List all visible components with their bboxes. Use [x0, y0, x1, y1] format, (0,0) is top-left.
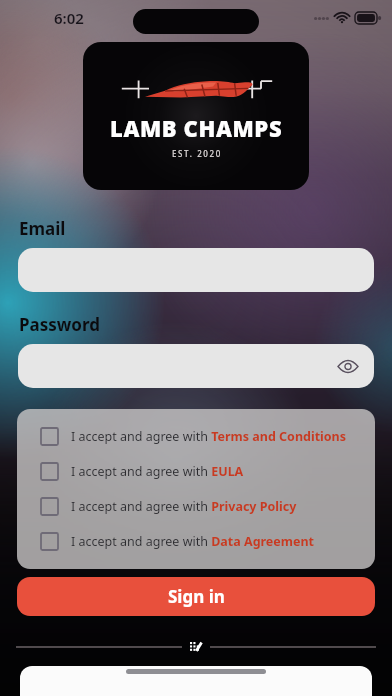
staticText: I accept and agree with Privacy Policy: [71, 498, 297, 515]
button[interactable]: LAMB CHAMPS: [83, 42, 309, 190]
button[interactable]: Show password: [18, 344, 374, 388]
button[interactable]: Show password: [335, 353, 361, 379]
staticText: Password: [19, 313, 100, 336]
button[interactable]: Sign in: [17, 577, 375, 616]
staticText: I accept and agree with Data Agreement: [71, 533, 314, 550]
staticText: 6:02: [54, 8, 84, 28]
button[interactable]: I accept and agree with Privacy Policy: [17, 489, 375, 524]
staticText: Email: [19, 217, 66, 240]
button[interactable]: I accept and agree with Data Agreement: [17, 524, 375, 559]
button[interactable]: I accept and agree with Terms and Condit…: [17, 419, 375, 454]
button[interactable]: [18, 248, 374, 292]
staticText: I accept and agree with EULA: [71, 463, 244, 480]
staticText: Sign in: [168, 585, 225, 608]
staticText: I accept and agree with Terms and Condit…: [71, 428, 347, 445]
button[interactable]: I accept and agree with EULA: [17, 454, 375, 489]
staticText: LAMB CHAMPS: [110, 113, 283, 143]
staticText: EST. 2020: [172, 148, 222, 159]
